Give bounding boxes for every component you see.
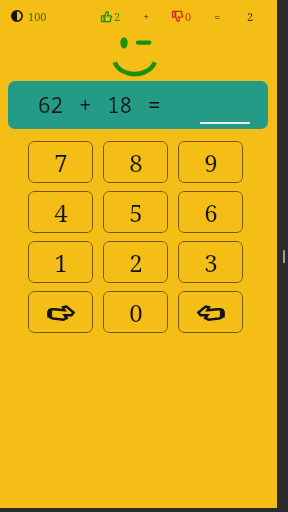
button[interactable]: 2	[103, 241, 168, 283]
staticText: 6	[204, 196, 218, 229]
staticText: 7	[54, 146, 68, 179]
button[interactable]: 4	[28, 191, 93, 233]
staticText: +	[79, 91, 92, 120]
button[interactable]: Backspace	[28, 291, 93, 333]
staticText: 62	[38, 91, 64, 120]
button[interactable]: 6	[178, 191, 243, 233]
button[interactable]: 0	[103, 291, 168, 333]
staticText: 0	[129, 296, 143, 329]
other: Coins	[11, 10, 23, 22]
staticText: 1	[54, 246, 68, 279]
staticText: 3	[204, 246, 218, 279]
button[interactable]: 9	[178, 141, 243, 183]
staticText: =	[148, 91, 161, 120]
button[interactable]: 62	[8, 81, 268, 129]
staticText: 100	[28, 9, 47, 24]
staticText: =	[214, 9, 221, 24]
staticText: 18	[107, 91, 133, 120]
button[interactable]: 3	[178, 241, 243, 283]
staticText: 5	[129, 196, 143, 229]
staticText: 2	[114, 9, 121, 24]
button[interactable]: 1	[28, 241, 93, 283]
button[interactable]: 5	[103, 191, 168, 233]
staticText: 9	[204, 146, 218, 179]
staticText: 0	[185, 9, 192, 24]
button[interactable]: 7	[28, 141, 93, 183]
button[interactable]: 8	[103, 141, 168, 183]
staticText: 2	[129, 246, 143, 279]
staticText: 8	[129, 146, 143, 179]
button[interactable]: Enter	[178, 291, 243, 333]
staticText: +	[143, 9, 150, 24]
staticText: 2	[247, 9, 254, 24]
staticText: 4	[54, 196, 68, 229]
